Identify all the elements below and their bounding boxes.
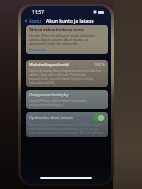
staticText: Huippusuorituskyky	[29, 92, 69, 97]
staticText: Akun kunto ja lataus	[46, 18, 94, 24]
staticText: Tämä ilmaisee akun kapasiteetin verrattu…	[29, 68, 105, 85]
button[interactable]: Maksimikapasiteetti	[26, 60, 108, 87]
staticText: Tärkeä akkua koskeva viesti	[29, 27, 84, 32]
button[interactable]: Lisätietoja...	[29, 47, 49, 52]
staticText: 100 %	[94, 62, 105, 67]
staticText: Akun käyttöiän hidastamiseksi iPhone opp…	[29, 122, 105, 135]
staticText: 11:57	[32, 9, 44, 15]
button[interactable]: Asetu	[23, 17, 42, 25]
button[interactable]: Tärkeä akkua koskeva viesti	[26, 25, 108, 54]
button[interactable]: Huippusuorituskyky	[26, 90, 108, 109]
staticText: Optimoitu akun lataus	[29, 115, 73, 120]
button[interactable]: Optimoitu akun lataus	[93, 114, 105, 121]
staticText: Tämän iPhonen akkua ei voida vahvistaa a…	[29, 33, 105, 46]
staticText: Maksimikapasiteetti	[29, 62, 70, 67]
staticText: Tämä iPhone-akku tukee normaalin huippus…	[29, 98, 105, 107]
button[interactable]: Optimoitu akun lataus	[26, 112, 108, 137]
staticText: Asetu	[29, 18, 41, 24]
